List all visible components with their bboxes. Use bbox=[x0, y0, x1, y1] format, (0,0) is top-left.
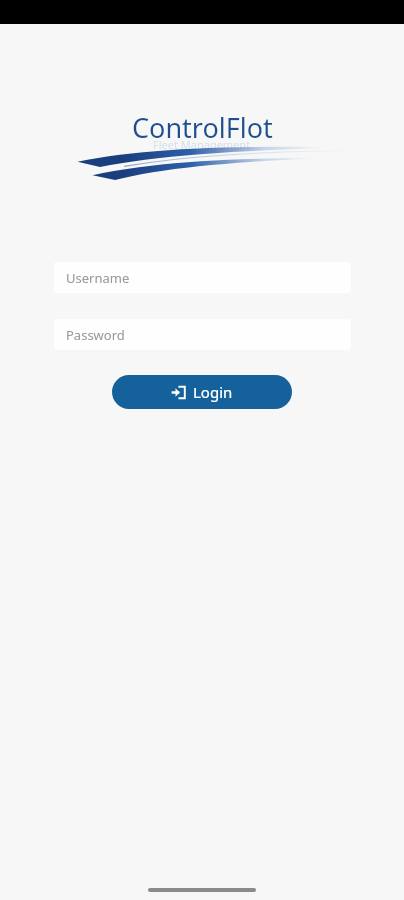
button[interactable]: Username bbox=[54, 262, 351, 293]
staticText: ControlFlot bbox=[132, 109, 273, 146]
other: Login bbox=[171, 385, 186, 400]
staticText: Password bbox=[66, 326, 125, 344]
staticText: Login bbox=[193, 382, 233, 402]
staticText: Fleet Management bbox=[153, 137, 251, 152]
staticText: Username bbox=[66, 269, 130, 287]
button[interactable]: Login bbox=[112, 375, 292, 409]
button[interactable]: Password bbox=[54, 319, 351, 350]
